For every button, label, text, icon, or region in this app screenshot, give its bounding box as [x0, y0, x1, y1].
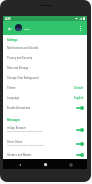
staticText: Default: [74, 86, 84, 89]
staticText: Data and Storage: [7, 66, 29, 69]
button[interactable]: In-App Browser: [3, 122, 87, 136]
button[interactable]: Notifications and Sounds: [3, 42, 87, 52]
button[interactable]: Back: [16, 161, 23, 168]
staticText: Change Chat Background: [7, 76, 39, 79]
staticText: Messages: [7, 118, 20, 121]
staticText: English: [74, 96, 84, 99]
button[interactable]: Recents: [67, 161, 74, 168]
staticText: Open external links within the app: [7, 130, 43, 133]
staticText: 4:20: [5, 17, 11, 20]
button[interactable]: Stickers and Masks: [3, 150, 87, 159]
staticText: Language: [7, 96, 20, 99]
button[interactable]: Language: [3, 92, 87, 102]
staticText: Stickers and Masks: [7, 153, 32, 156]
staticText: online: [24, 28, 30, 31]
staticText: Theme: [7, 86, 16, 89]
staticText: Show recent chats in android share: [7, 144, 44, 147]
button[interactable]: Enable Animations: [3, 102, 87, 112]
button[interactable]: Back: [5, 24, 14, 33]
staticText: Settings: [7, 38, 18, 41]
button[interactable]: Direct Share: [3, 136, 87, 150]
staticText: Direct Share: [7, 140, 23, 143]
staticText: In-App Browser: [7, 126, 26, 129]
staticText: Enable Animations: [7, 106, 31, 109]
button[interactable]: More options: [76, 24, 85, 33]
button[interactable]: Home: [42, 161, 49, 168]
button[interactable]: Theme: [3, 82, 87, 92]
button[interactable]: Privacy and Security: [3, 52, 87, 62]
button[interactable]: Data and Storage: [3, 62, 87, 72]
button[interactable]: Change Chat Background: [3, 72, 87, 82]
staticText: Notifications and Sounds: [7, 46, 39, 49]
staticText: Privacy and Security: [7, 56, 33, 59]
